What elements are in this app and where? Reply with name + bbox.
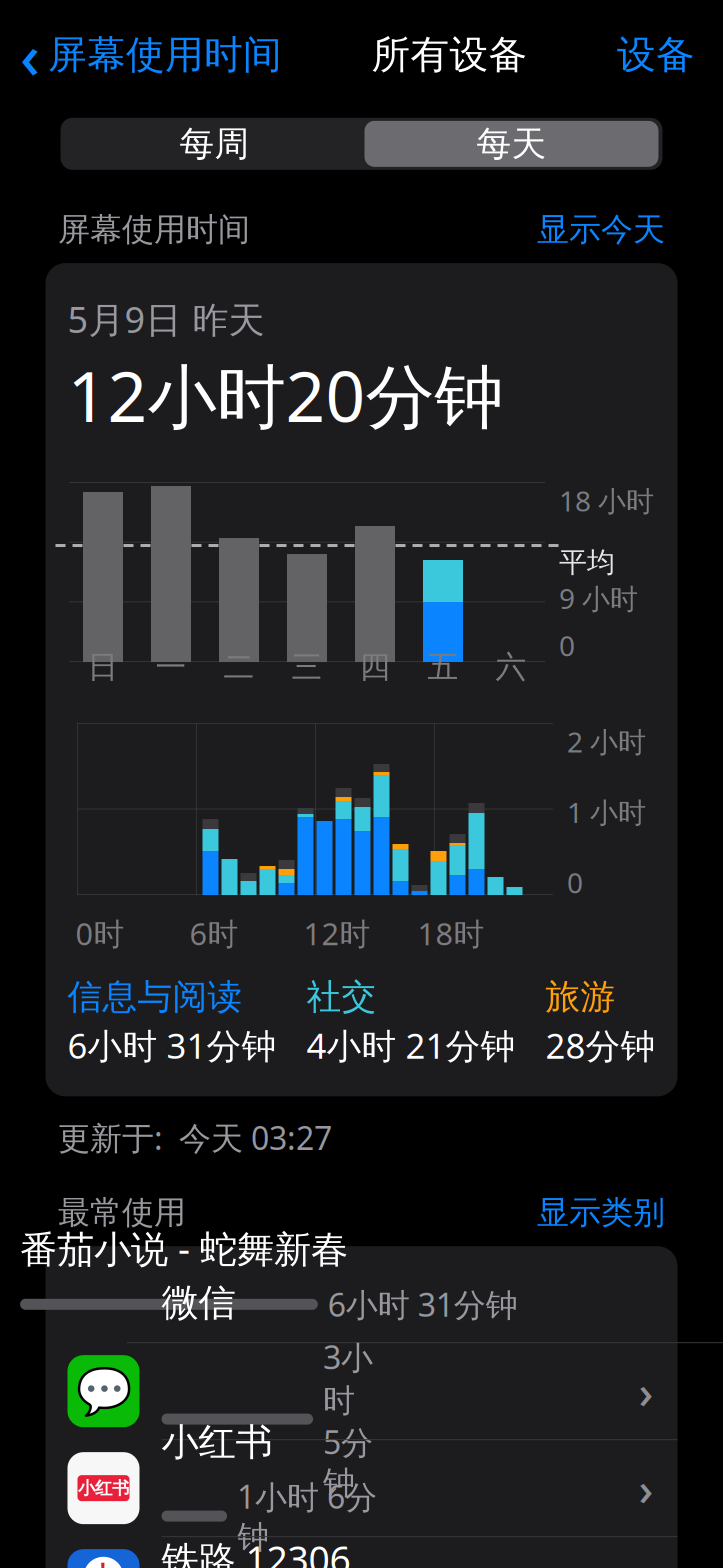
staticText: 所有设备 bbox=[371, 31, 527, 79]
staticText: 小红书 bbox=[161, 1419, 272, 1465]
staticText: 显示类别 bbox=[537, 1193, 665, 1232]
staticText: 社交 bbox=[306, 976, 376, 1018]
button[interactable]: 每天 bbox=[364, 121, 658, 167]
staticText: ‹ bbox=[20, 14, 40, 95]
staticText: 平均 bbox=[559, 545, 615, 580]
staticText: 屏幕使用时间 bbox=[58, 210, 250, 249]
staticText: 9 小时 bbox=[559, 580, 638, 617]
staticText: 二 bbox=[223, 648, 254, 686]
staticText: 五 bbox=[427, 648, 458, 686]
staticText: 最常使用 bbox=[58, 1193, 186, 1232]
button[interactable]: 小说 bbox=[0, 1246, 723, 1343]
staticText: 番茄小说 - 蛇舞新春 bbox=[20, 1223, 348, 1273]
staticText: 六 bbox=[495, 648, 526, 686]
staticText: 5月9日 昨天 bbox=[67, 295, 264, 343]
staticText: 日 bbox=[87, 648, 118, 686]
staticText: 每周 bbox=[179, 122, 249, 165]
staticText: 6小时 31分钟 bbox=[328, 1283, 518, 1326]
button[interactable]: 中 bbox=[45, 1537, 677, 1568]
staticText: 小红书 bbox=[78, 1477, 129, 1499]
button[interactable]: 小红书 bbox=[45, 1440, 677, 1537]
staticText: 2 小时 bbox=[567, 723, 646, 760]
staticText: 设备 bbox=[617, 31, 695, 79]
staticText: 12时 bbox=[303, 913, 370, 954]
staticText: 18时 bbox=[417, 913, 484, 954]
staticText: 6时 bbox=[189, 913, 238, 954]
button[interactable]: 显示类别 bbox=[537, 1193, 665, 1232]
staticText: › bbox=[638, 1458, 653, 1518]
staticText: › bbox=[638, 1361, 653, 1421]
button[interactable]: 设备 bbox=[617, 23, 723, 87]
staticText: 微信 bbox=[161, 1280, 235, 1326]
staticText: 18 小时 bbox=[559, 482, 654, 519]
staticText: 6小时 31分钟 bbox=[67, 1022, 276, 1068]
staticText: 四 bbox=[359, 648, 390, 686]
staticText: 28分钟 bbox=[545, 1022, 655, 1068]
staticText: 中 bbox=[90, 1560, 117, 1568]
staticText: 1 小时 bbox=[567, 793, 646, 831]
button[interactable]: 每周 bbox=[64, 119, 364, 169]
staticText: 0 bbox=[559, 627, 575, 664]
staticText: 4小时 21分钟 bbox=[306, 1022, 515, 1068]
staticText: 0 bbox=[567, 864, 583, 901]
staticText: 铁路 12306 bbox=[161, 1534, 350, 1568]
button[interactable]: ‹ bbox=[0, 6, 282, 103]
staticText: 三 bbox=[291, 648, 322, 686]
staticText: 💬 bbox=[75, 1365, 131, 1417]
staticText: 每天 bbox=[476, 122, 546, 165]
staticText: 3小时 5分钟 bbox=[323, 1336, 373, 1502]
staticText: 信息与阅读 bbox=[67, 976, 242, 1018]
staticText: 更新于: 今天 03:27 bbox=[58, 1116, 332, 1159]
staticText: 0时 bbox=[75, 913, 124, 954]
button[interactable]: 显示今天 bbox=[537, 210, 665, 249]
button[interactable]: 💬 bbox=[45, 1343, 677, 1440]
staticText: 旅游 bbox=[545, 976, 615, 1018]
staticText: 12小时20分钟 bbox=[67, 349, 503, 441]
staticText: 一 bbox=[155, 648, 186, 686]
staticText: 1小时 6分钟 bbox=[237, 1475, 377, 1557]
staticText: 屏幕使用时间 bbox=[48, 31, 282, 79]
staticText: 显示今天 bbox=[537, 210, 665, 249]
